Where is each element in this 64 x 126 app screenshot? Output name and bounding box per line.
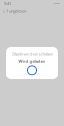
staticText: Wird geladen xyxy=(18,58,45,64)
staticText: ••• xyxy=(54,1,60,6)
staticText: 1 ungelesen xyxy=(6,8,26,14)
staticText: Objekt wird verschoben xyxy=(11,51,52,56)
staticText: 9:41 xyxy=(4,1,11,6)
staticText: ‹ xyxy=(3,7,5,15)
